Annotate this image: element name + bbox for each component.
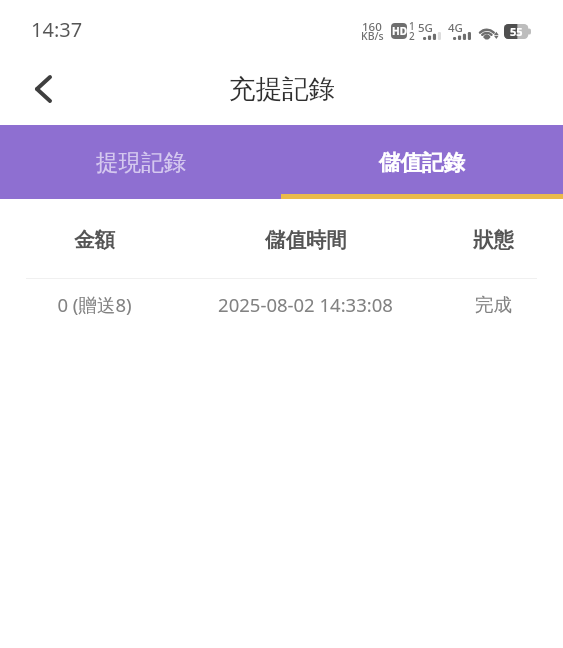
button[interactable]: 提現記錄 bbox=[0, 125, 281, 199]
staticText: 55 bbox=[510, 24, 523, 39]
staticText: HD bbox=[392, 24, 407, 38]
staticText: KB/s bbox=[361, 29, 384, 43]
staticText: 提現記錄 bbox=[96, 148, 186, 176]
staticText: 2025-08-02 14:33:08 bbox=[218, 292, 393, 317]
staticText: 金額 bbox=[74, 227, 115, 253]
staticText: 4G bbox=[448, 20, 463, 36]
staticText: 完成 bbox=[475, 293, 512, 316]
staticText: 0 (贈送8) bbox=[57, 292, 132, 317]
staticText: 儲值時間 bbox=[265, 227, 347, 253]
button[interactable]: 儲值記錄 bbox=[281, 125, 563, 199]
staticText: 狀態 bbox=[473, 227, 514, 253]
button[interactable]: Back bbox=[15, 60, 72, 117]
staticText: 儲值記錄 bbox=[379, 149, 465, 176]
staticText: 14:37 bbox=[31, 16, 83, 43]
staticText: 5G bbox=[418, 20, 433, 36]
staticText: 充提記錄 bbox=[229, 72, 335, 105]
staticText: 1 bbox=[409, 19, 415, 33]
staticText: 2 bbox=[409, 29, 415, 43]
staticText: 160 bbox=[362, 19, 382, 35]
button[interactable]: 0 (贈送8) bbox=[0, 279, 563, 336]
